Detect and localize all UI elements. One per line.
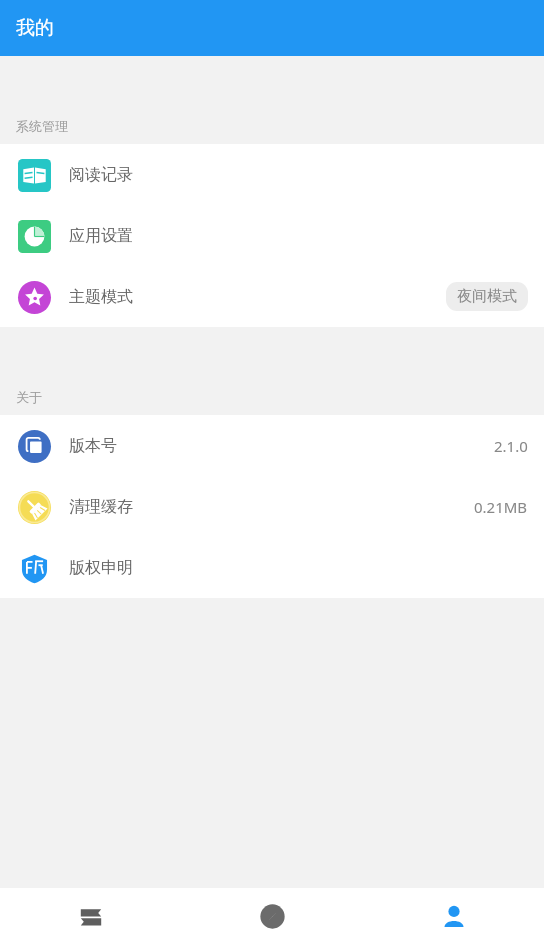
- button[interactable]: Discover: [182, 888, 363, 945]
- button[interactable]: 阅读记录: [0, 144, 544, 205]
- staticText: 2.1.0: [494, 436, 528, 456]
- staticText: 清理缓存: [69, 497, 133, 517]
- button[interactable]: 主题模式: [0, 266, 544, 327]
- staticText: 我的: [16, 16, 54, 40]
- staticText: 主题模式: [69, 287, 133, 307]
- button[interactable]: 夜间模式: [446, 282, 528, 311]
- button[interactable]: 版权申明: [0, 537, 544, 598]
- button[interactable]: 版本号: [0, 415, 544, 476]
- staticText: 阅读记录: [69, 165, 133, 185]
- button[interactable]: Bookshelf: [0, 888, 182, 945]
- button[interactable]: 清理缓存: [0, 476, 544, 537]
- button[interactable]: Profile: [363, 888, 544, 945]
- staticText: 应用设置: [69, 226, 133, 246]
- staticText: 夜间模式: [457, 287, 517, 306]
- staticText: 关于: [16, 389, 42, 405]
- staticText: 版本号: [69, 436, 117, 456]
- staticText: 系统管理: [16, 118, 68, 134]
- button[interactable]: 应用设置: [0, 205, 544, 266]
- staticText: 0.21MB: [474, 497, 528, 517]
- staticText: 版权申明: [69, 558, 133, 578]
